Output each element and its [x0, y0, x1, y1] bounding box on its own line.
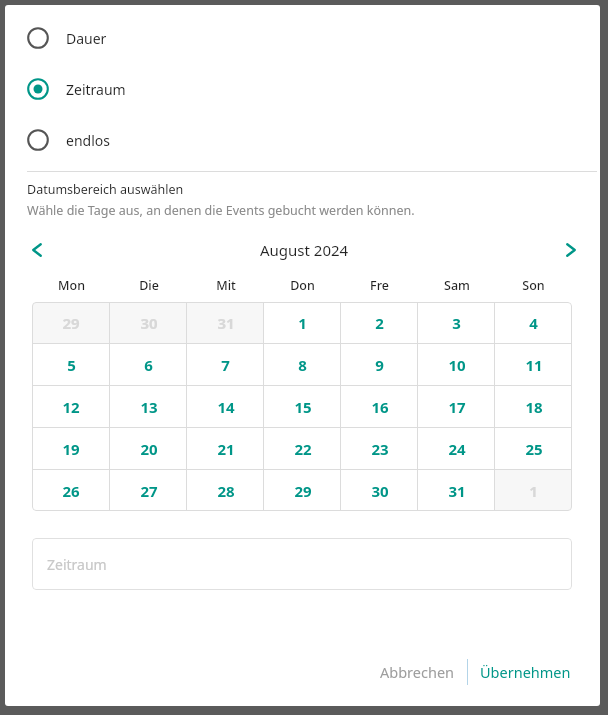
button[interactable]: 24	[418, 428, 495, 469]
button[interactable]: 31	[418, 470, 495, 511]
button[interactable]: 11	[495, 344, 572, 385]
button[interactable]: 22	[264, 428, 341, 469]
staticText: 31	[217, 313, 235, 333]
button[interactable]: Zeitraum	[5, 74, 600, 104]
staticText: 15	[294, 397, 312, 417]
staticText: Übernehmen	[480, 662, 571, 682]
button[interactable]: 15	[264, 386, 341, 427]
button[interactable]: 31	[187, 302, 264, 343]
staticText: 9	[375, 355, 384, 375]
button[interactable]: 4	[495, 302, 572, 343]
staticText: 24	[448, 439, 466, 459]
staticText: 16	[371, 397, 389, 417]
button[interactable]: 26	[32, 470, 110, 511]
button[interactable]: 7	[187, 344, 264, 385]
staticText: Son	[522, 277, 545, 294]
staticText: 18	[525, 397, 543, 417]
staticText: 21	[217, 439, 235, 459]
button[interactable]: Zeitraum	[32, 538, 572, 590]
button[interactable]: 25	[495, 428, 572, 469]
button[interactable]: 23	[341, 428, 418, 469]
button[interactable]: 16	[341, 386, 418, 427]
staticText: 22	[294, 439, 312, 459]
button[interactable]: 29	[32, 302, 110, 343]
staticText: Die	[139, 277, 159, 294]
button[interactable]: 1	[264, 302, 341, 343]
button[interactable]: 3	[418, 302, 495, 343]
button[interactable]: endlos	[5, 125, 600, 155]
button[interactable]: 6	[110, 344, 187, 385]
staticText: 29	[294, 481, 312, 501]
button[interactable]: 12	[32, 386, 110, 427]
button[interactable]: 14	[187, 386, 264, 427]
button[interactable]: Vorheriger Monat	[22, 235, 52, 265]
button[interactable]: Nächster Monat	[556, 235, 586, 265]
button[interactable]: 30	[341, 470, 418, 511]
staticText: 14	[217, 397, 235, 417]
staticText: Mon	[58, 277, 85, 294]
staticText: Fre	[370, 277, 389, 294]
button[interactable]: 1	[495, 470, 572, 511]
staticText: 20	[140, 439, 158, 459]
button[interactable]: 20	[110, 428, 187, 469]
button[interactable]: Dauer	[5, 23, 600, 53]
staticText: Mit	[216, 277, 236, 294]
staticText: 17	[448, 397, 466, 417]
staticText: Don	[290, 277, 315, 294]
staticText: 4	[529, 313, 538, 333]
staticText: Abbrechen	[380, 662, 455, 682]
staticText: 31	[448, 481, 466, 501]
button[interactable]: 9	[341, 344, 418, 385]
staticText: 6	[144, 355, 153, 375]
staticText: 26	[62, 481, 80, 501]
staticText: 3	[452, 313, 461, 333]
button[interactable]: 29	[264, 470, 341, 511]
staticText: 19	[62, 439, 80, 459]
staticText: 13	[140, 397, 158, 417]
staticText: 28	[217, 481, 235, 501]
button[interactable]: 5	[32, 344, 110, 385]
staticText: 30	[371, 481, 389, 501]
staticText: endlos	[66, 131, 110, 150]
button[interactable]: 30	[110, 302, 187, 343]
staticText: 7	[221, 355, 230, 375]
staticText: 1	[298, 313, 307, 333]
button[interactable]: 17	[418, 386, 495, 427]
staticText: Dauer	[66, 29, 107, 48]
staticText: Datumsbereich auswählen	[27, 181, 184, 198]
staticText: 30	[140, 313, 158, 333]
staticText: 29	[62, 313, 80, 333]
staticText: 23	[371, 439, 389, 459]
button[interactable]: Abbrechen	[368, 656, 467, 688]
button[interactable]: 10	[418, 344, 495, 385]
button[interactable]: 21	[187, 428, 264, 469]
button[interactable]: 8	[264, 344, 341, 385]
button[interactable]: 13	[110, 386, 187, 427]
staticText: 12	[62, 397, 80, 417]
staticText: 25	[525, 439, 543, 459]
staticText: 1	[529, 481, 538, 501]
staticText: 10	[448, 355, 466, 375]
staticText: Sam	[444, 277, 470, 294]
button[interactable]: 19	[32, 428, 110, 469]
staticText: August 2024	[260, 240, 349, 260]
button[interactable]: 27	[110, 470, 187, 511]
button[interactable]: Übernehmen	[468, 656, 583, 688]
staticText: 8	[298, 355, 307, 375]
staticText: Zeitraum	[47, 555, 107, 574]
staticText: Wähle die Tage aus, an denen die Events …	[27, 202, 415, 219]
button[interactable]: 2	[341, 302, 418, 343]
staticText: 11	[525, 355, 543, 375]
staticText: 5	[67, 355, 76, 375]
staticText: 2	[375, 313, 384, 333]
staticText: 27	[140, 481, 158, 501]
staticText: Zeitraum	[66, 80, 126, 99]
button[interactable]: 28	[187, 470, 264, 511]
button[interactable]: 18	[495, 386, 572, 427]
